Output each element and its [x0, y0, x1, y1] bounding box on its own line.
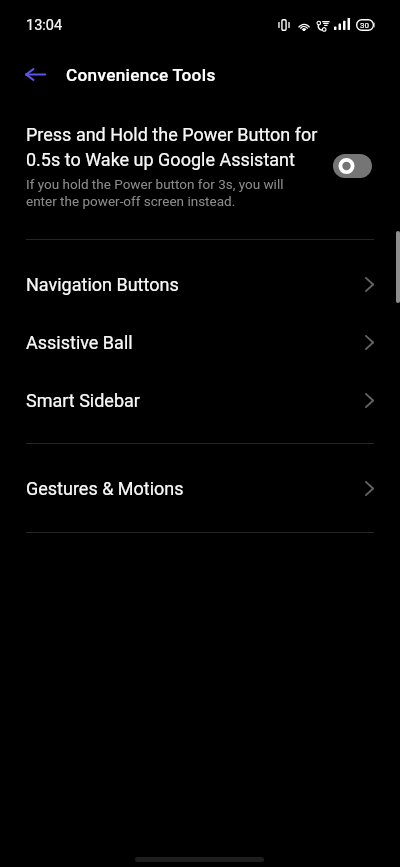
button[interactable]: Assistive Ball [0, 313, 400, 371]
staticText: 13:04 [26, 17, 63, 34]
button[interactable]: Navigation Buttons [0, 255, 400, 313]
staticText: Press and Hold the Power Button for 0.5s… [26, 124, 321, 170]
staticText: Assistive Ball [26, 332, 133, 353]
staticText: Convenience Tools [66, 65, 216, 85]
staticText: Gestures & Motions [26, 478, 184, 499]
staticText: 30 [360, 21, 369, 30]
button[interactable]: Smart Sidebar [0, 371, 400, 429]
staticText: If you hold the Power button for 3s, you… [26, 176, 288, 210]
button[interactable]: Back [17, 56, 53, 92]
button[interactable]: Power button Google Assistant toggle [333, 154, 372, 178]
button[interactable]: Gestures & Motions [0, 459, 400, 517]
staticText: Smart Sidebar [26, 390, 140, 411]
staticText: Navigation Buttons [26, 274, 179, 295]
